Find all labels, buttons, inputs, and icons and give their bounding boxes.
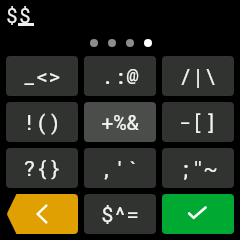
button[interactable]: $^= bbox=[84, 194, 156, 234]
button[interactable]: Backspace bbox=[6, 194, 78, 234]
button[interactable]: ,'` bbox=[84, 148, 156, 188]
button[interactable]: +%& bbox=[84, 102, 156, 142]
button[interactable]: .:@ bbox=[84, 56, 156, 96]
staticText: -[] bbox=[179, 108, 217, 136]
button[interactable]: ;"~ bbox=[162, 148, 234, 188]
staticText: ;"~ bbox=[179, 154, 217, 182]
staticText: $$ bbox=[6, 3, 32, 29]
button[interactable]: -[] bbox=[162, 102, 234, 142]
staticText: ,'` bbox=[101, 154, 139, 182]
button[interactable]: Page 3 bbox=[126, 39, 134, 47]
button[interactable]: Accept bbox=[162, 194, 234, 234]
staticText: $^= bbox=[101, 200, 139, 228]
staticText: _<> bbox=[23, 62, 61, 90]
button[interactable]: !() bbox=[6, 102, 78, 142]
button[interactable]: _<> bbox=[6, 56, 78, 96]
staticText: !() bbox=[23, 108, 61, 136]
button[interactable]: ?{} bbox=[6, 148, 78, 188]
button[interactable]: Page 2 bbox=[108, 39, 116, 47]
staticText: ?{} bbox=[23, 154, 61, 182]
staticText: +%& bbox=[101, 108, 139, 136]
button[interactable]: /|\ bbox=[162, 56, 234, 96]
staticText: /|\ bbox=[179, 62, 217, 90]
staticText: .:@ bbox=[101, 62, 139, 90]
button[interactable]: Page 4 bbox=[144, 39, 152, 47]
button[interactable]: Page 1 bbox=[90, 39, 98, 47]
